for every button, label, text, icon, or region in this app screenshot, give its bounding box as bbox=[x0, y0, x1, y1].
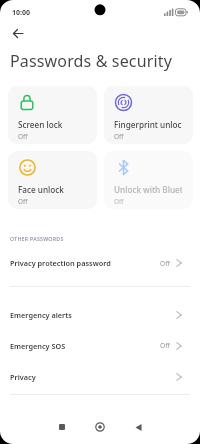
staticText: Off bbox=[18, 132, 28, 141]
staticText: Screen lock bbox=[18, 119, 86, 130]
staticText: Privacy protection password bbox=[10, 258, 111, 268]
button[interactable]: Privacy protection password bbox=[0, 249, 200, 277]
button[interactable]: Screen lock bbox=[8, 86, 97, 144]
button[interactable]: Fingerprint unlock bbox=[104, 86, 193, 144]
staticText: Fingerprint unlock bbox=[114, 119, 182, 130]
staticText: Off bbox=[18, 197, 28, 206]
button[interactable]: Emergency SOS bbox=[0, 331, 200, 360]
staticText: Off bbox=[160, 341, 170, 350]
staticText: 10:00 bbox=[12, 8, 30, 18]
staticText: Emergency SOS bbox=[10, 341, 66, 351]
button[interactable] bbox=[87, 414, 113, 440]
staticText: Passwords & security bbox=[10, 50, 172, 72]
staticText: Off bbox=[160, 259, 170, 268]
staticText: Face unlock bbox=[18, 184, 86, 195]
button[interactable] bbox=[49, 414, 75, 440]
staticText: Privacy bbox=[10, 372, 36, 382]
staticText: Off bbox=[114, 197, 124, 206]
staticText: Unlock with Bluetooth device bbox=[114, 184, 182, 195]
button[interactable]: Privacy bbox=[0, 362, 200, 391]
button[interactable]: Emergency alerts bbox=[0, 300, 200, 329]
staticText: OTHER PASSWORDS bbox=[10, 235, 64, 242]
staticText: Emergency alerts bbox=[10, 310, 72, 320]
button[interactable] bbox=[125, 414, 151, 440]
button[interactable] bbox=[8, 24, 28, 44]
button[interactable]: Unlock with Bluetooth device bbox=[104, 151, 193, 209]
staticText: Off bbox=[114, 132, 124, 141]
button[interactable]: Face unlock bbox=[8, 151, 97, 209]
